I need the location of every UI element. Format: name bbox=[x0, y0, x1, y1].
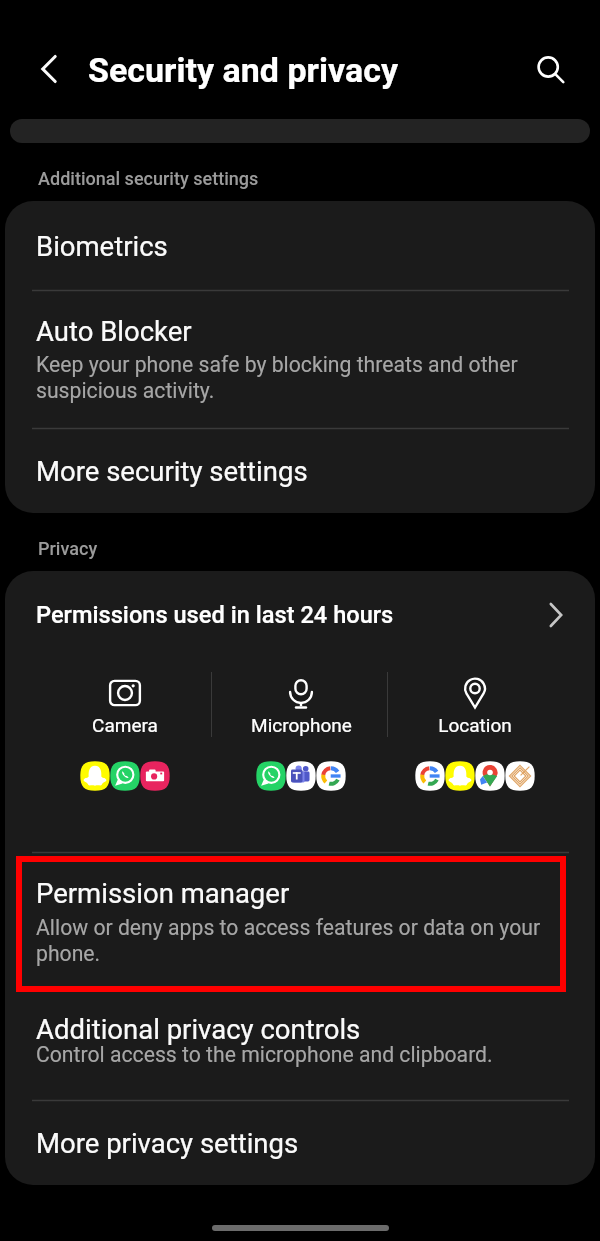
button[interactable]: Auto Blocker bbox=[5, 291, 595, 428]
button[interactable]: Biometrics bbox=[5, 201, 595, 290]
button[interactable]: More security settings bbox=[5, 429, 595, 513]
button[interactable]: Location bbox=[390, 659, 560, 852]
staticText: Additional security settings bbox=[38, 168, 259, 189]
button[interactable]: Camera bbox=[40, 659, 210, 852]
button[interactable]: Back bbox=[27, 47, 71, 91]
staticText: Additional privacy controls bbox=[36, 1013, 361, 1045]
button[interactable]: Permissions used in last 24 hours bbox=[5, 571, 595, 659]
staticText: More privacy settings bbox=[36, 1127, 299, 1159]
staticText: More security settings bbox=[36, 455, 308, 487]
staticText: Security and privacy bbox=[88, 50, 399, 90]
button[interactable]: Permission manager bbox=[5, 853, 595, 990]
button[interactable]: Search bbox=[530, 50, 574, 94]
staticText: Biometrics bbox=[36, 230, 168, 262]
staticText: Control access to the microphone and cli… bbox=[36, 1042, 493, 1067]
staticText: Location bbox=[438, 714, 512, 736]
button[interactable]: Microphone bbox=[216, 659, 386, 852]
button[interactable]: More privacy settings bbox=[5, 1101, 595, 1185]
staticText: Permission manager bbox=[36, 877, 290, 909]
button[interactable]: Additional privacy controls bbox=[5, 990, 595, 1100]
staticText: Privacy bbox=[38, 538, 98, 559]
staticText: Keep your phone safe by blocking threats… bbox=[36, 352, 564, 403]
staticText: Camera bbox=[92, 714, 158, 736]
staticText: Auto Blocker bbox=[36, 315, 192, 347]
staticText: Microphone bbox=[251, 714, 352, 736]
staticText: Permissions used in last 24 hours bbox=[36, 601, 394, 629]
staticText: Allow or deny apps to access features or… bbox=[36, 915, 564, 966]
